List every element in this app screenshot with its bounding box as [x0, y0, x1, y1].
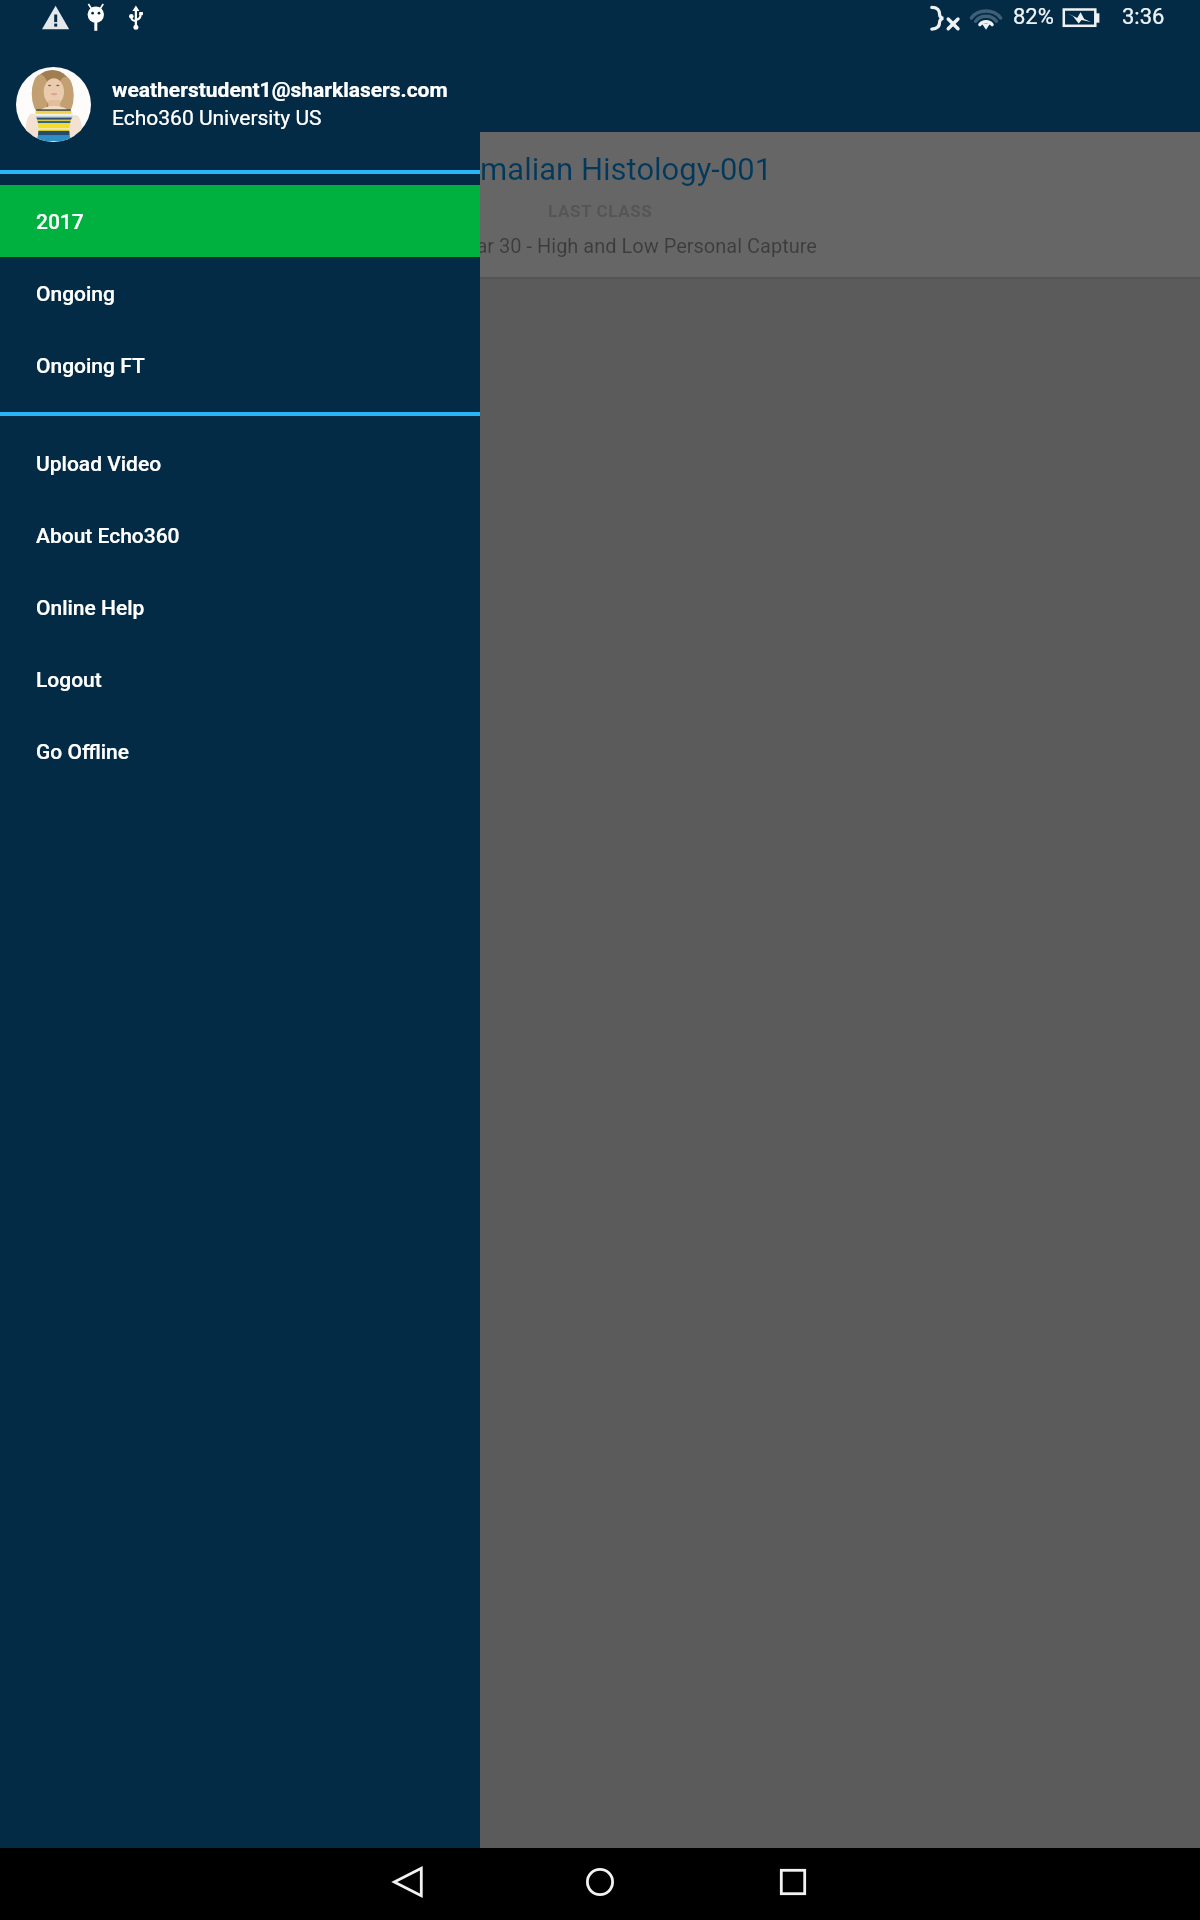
staticText: Ongoing — [36, 282, 115, 307]
button[interactable]: Recent apps — [761, 1850, 825, 1914]
button[interactable]: Home — [568, 1850, 632, 1914]
button[interactable]: Go Offline — [0, 715, 480, 787]
staticText: Mar 30 - High and Low Personal Capture — [459, 234, 817, 257]
staticText: Echo360 University US — [112, 106, 322, 131]
button[interactable]: Logout — [0, 643, 480, 715]
button[interactable]: Online Help — [0, 571, 480, 643]
staticText: Ongoing FT — [36, 354, 145, 379]
button[interactable]: Back — [375, 1850, 439, 1914]
button[interactable]: Ongoing — [0, 257, 480, 329]
staticText: About Echo360 — [36, 524, 180, 549]
staticText: Go Offline — [36, 740, 129, 765]
staticText: LAST CLASS — [548, 201, 653, 221]
button[interactable]: 2017 — [0, 185, 480, 257]
staticText: Upload Video — [36, 452, 162, 477]
button[interactable]: Upload Video — [0, 427, 480, 499]
staticText: 2017 — [36, 210, 84, 235]
button[interactable]: Ongoing FT — [0, 329, 480, 401]
button[interactable]: About Echo360 — [0, 499, 480, 571]
staticText: weatherstudent1@sharklasers.com — [112, 78, 448, 103]
staticText: Mammalian Histology-001 — [409, 151, 773, 187]
button[interactable]: weatherstudent1@sharklasers.com — [0, 48, 480, 170]
staticText: 3:36 — [1122, 4, 1165, 30]
staticText: Logout — [36, 668, 102, 693]
other: Status icons — [0, 0, 480, 48]
staticText: 82% — [1013, 4, 1054, 30]
staticText: Online Help — [36, 596, 145, 621]
